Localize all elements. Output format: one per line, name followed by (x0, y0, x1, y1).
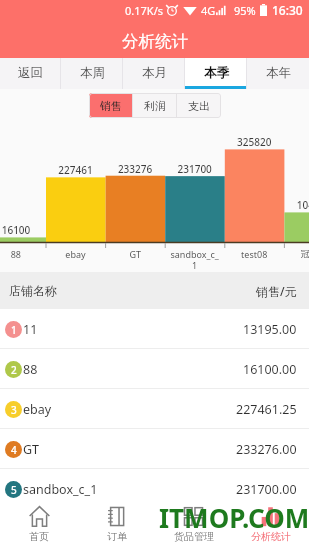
button[interactable]: 5 (0, 469, 309, 509)
staticText: 227461.25 (236, 401, 297, 418)
button[interactable]: 3 (0, 389, 309, 429)
staticText: 16100.00 (243, 361, 297, 378)
staticText: 2 (11, 363, 17, 377)
staticText: 首页 (29, 530, 49, 543)
button[interactable]: 本季 (185, 58, 247, 89)
staticText: 0.17K/s (125, 3, 163, 18)
button[interactable]: 销售 (89, 93, 133, 118)
staticText: sandbox_c_1 (23, 481, 98, 498)
staticText: 本月 (142, 65, 167, 81)
staticText: ebay (23, 401, 52, 418)
button[interactable]: 1 (0, 309, 309, 349)
staticText: 95% (234, 3, 256, 18)
button[interactable]: 订单 (78, 499, 155, 550)
staticText: 店铺名称 (9, 283, 57, 298)
staticText: 利润 (144, 99, 166, 113)
staticText: 分析统计 (122, 31, 188, 52)
button[interactable]: 利润 (133, 93, 177, 118)
staticText: ITMOP.COM (159, 500, 309, 535)
staticText: 销售/元 (256, 283, 297, 299)
staticText: 11 (23, 321, 38, 338)
button[interactable]: 本月 (123, 58, 185, 89)
button[interactable]: 4 (0, 429, 309, 469)
button[interactable]: 货品管理 (155, 499, 232, 550)
staticText: 1 (11, 323, 17, 337)
staticText: 13195.00 (243, 321, 297, 338)
staticText: 本年 (266, 65, 291, 81)
button[interactable]: 分析统计 (232, 499, 309, 550)
button[interactable]: 本周 (61, 58, 123, 89)
staticText: 231700.00 (236, 481, 297, 498)
staticText: 销售 (100, 99, 122, 113)
button[interactable]: 2 (0, 349, 309, 389)
staticText: 分析统计 (251, 530, 291, 543)
button[interactable]: 支出 (177, 93, 221, 118)
staticText: 233276.00 (236, 441, 297, 458)
staticText: 4G (201, 3, 216, 18)
staticText: 88 (23, 361, 38, 378)
staticText: 4 (11, 443, 17, 457)
staticText: GT (23, 441, 40, 458)
staticText: 16:30 (272, 2, 303, 18)
staticText: 返回 (18, 65, 43, 81)
staticText: 货品管理 (174, 530, 214, 543)
button[interactable]: 首页 (0, 499, 78, 550)
staticText: 本周 (80, 65, 105, 81)
button[interactable]: 返回 (0, 58, 61, 89)
staticText: 5 (11, 483, 17, 497)
staticText: 支出 (188, 99, 210, 113)
staticText: 3 (11, 403, 17, 417)
staticText: 本季 (204, 65, 229, 81)
button[interactable]: 本年 (247, 58, 309, 89)
staticText: 订单 (107, 530, 127, 543)
